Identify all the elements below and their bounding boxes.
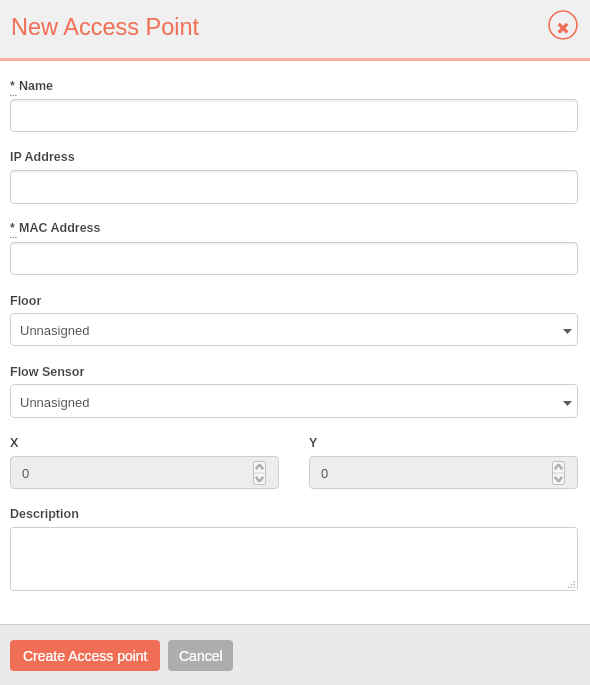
staticText: * xyxy=(10,221,15,235)
staticText: Unnasigned xyxy=(20,395,90,410)
button[interactable]: Text field xyxy=(10,99,578,132)
button[interactable]: Cancel xyxy=(168,640,233,671)
button[interactable]: Text field xyxy=(10,242,578,275)
staticText: Y xyxy=(309,436,318,450)
button[interactable]: Close dialog xyxy=(548,10,578,40)
staticText: New Access Point xyxy=(11,14,200,40)
staticText: IP Address xyxy=(10,150,75,164)
staticText: Flow Sensor xyxy=(10,365,85,379)
other: Increment or decrement value xyxy=(552,461,565,485)
staticText: Floor xyxy=(10,294,42,308)
button[interactable]: 0 xyxy=(309,456,578,489)
button[interactable]: 0 xyxy=(10,456,279,489)
staticText: MAC Address xyxy=(19,221,101,235)
staticText: X xyxy=(10,436,19,450)
staticText: 0 xyxy=(321,466,329,481)
button[interactable]: Text field xyxy=(10,170,578,204)
other: Increment or decrement value xyxy=(253,461,266,485)
button[interactable]: Create Access point xyxy=(10,640,160,671)
staticText: 0 xyxy=(22,466,30,481)
staticText: Description xyxy=(10,507,79,521)
staticText: Create Access point xyxy=(23,648,148,664)
button[interactable]: Description text area xyxy=(10,527,578,591)
staticText: * xyxy=(10,79,15,93)
button[interactable]: Unnasigned xyxy=(10,313,578,346)
button[interactable]: Unnasigned xyxy=(10,384,578,418)
staticText: Unnasigned xyxy=(20,323,90,338)
staticText: Cancel xyxy=(179,648,223,664)
staticText: Name xyxy=(19,79,54,93)
